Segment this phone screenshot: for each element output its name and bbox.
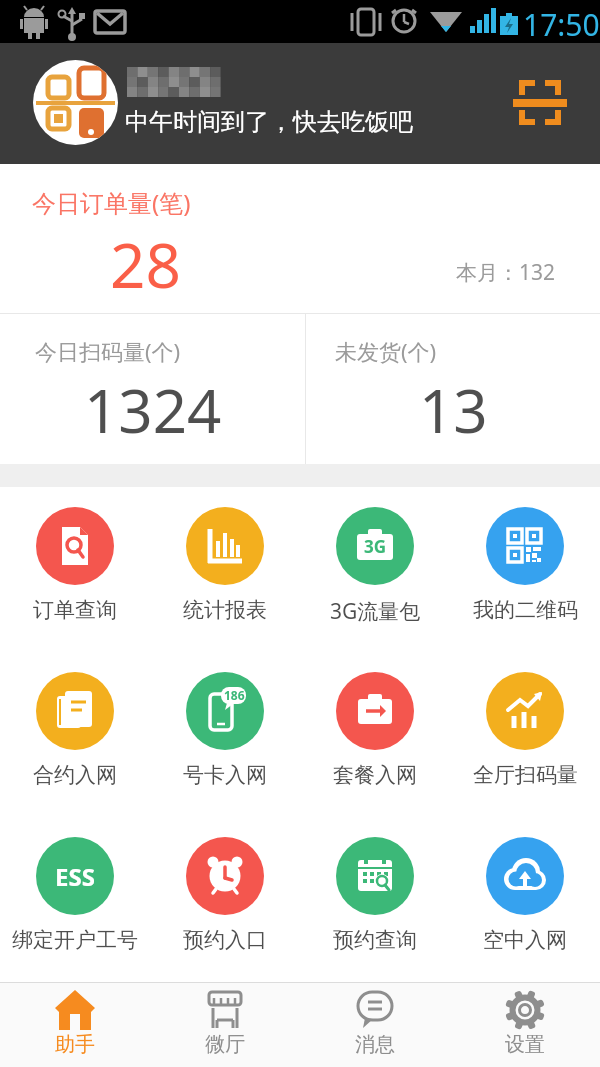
button[interactable]: 消息 — [300, 983, 450, 1067]
button[interactable]: 预约入口 — [150, 817, 300, 982]
staticText: 今日订单量(笔) — [32, 186, 191, 219]
button[interactable]: 设置 — [450, 983, 600, 1067]
staticText: 合约入网 — [33, 762, 117, 788]
staticText: 消息 — [355, 1032, 395, 1057]
staticText: 预约入口 — [183, 927, 267, 953]
staticText: 3G — [364, 535, 387, 558]
button[interactable]: 186 — [150, 652, 300, 817]
button[interactable]: 空中入网 — [450, 817, 600, 982]
staticText: 全厅扫码量 — [473, 762, 578, 788]
staticText: 186 — [224, 687, 245, 703]
button[interactable]: 助手 — [0, 983, 150, 1067]
staticText: 未发货(个) — [335, 336, 437, 366]
staticText: 预约查询 — [333, 927, 417, 953]
button[interactable]: ESS — [0, 817, 150, 982]
staticText: 套餐入网 — [333, 762, 417, 788]
staticText: 绑定开户工号 — [12, 927, 138, 953]
staticText: 13 — [419, 369, 488, 451]
staticText: ESS — [55, 860, 95, 893]
staticText: 设置 — [505, 1032, 545, 1057]
button[interactable]: 我的二维码 — [450, 487, 600, 652]
staticText: 17:50 — [523, 4, 600, 45]
staticText: 统计报表 — [183, 597, 267, 623]
button[interactable]: 全厅扫码量 — [450, 652, 600, 817]
button[interactable]: 合约入网 — [0, 652, 150, 817]
staticText: 中午时间到了，快去吃饭吧 — [125, 107, 413, 137]
button[interactable]: 微厅 — [150, 983, 300, 1067]
button[interactable]: 3G — [300, 487, 450, 652]
staticText: 微厅 — [205, 1032, 245, 1057]
button[interactable]: 订单查询 — [0, 487, 150, 652]
staticText: 28 — [110, 222, 181, 306]
staticText: 空中入网 — [483, 927, 567, 953]
staticText: 我的二维码 — [473, 597, 578, 623]
staticText: 号卡入网 — [183, 762, 267, 788]
staticText: 本月：132 — [456, 258, 556, 287]
staticText: 1324 — [84, 369, 222, 451]
staticText: 3G流量包 — [330, 597, 421, 626]
staticText: 助手 — [55, 1032, 95, 1057]
button[interactable]: 统计报表 — [150, 487, 300, 652]
staticText: 今日扫码量(个) — [35, 336, 181, 366]
button[interactable] — [503, 70, 577, 135]
button[interactable]: 预约查询 — [300, 817, 450, 982]
staticText: 订单查询 — [33, 597, 117, 623]
button[interactable]: 套餐入网 — [300, 652, 450, 817]
